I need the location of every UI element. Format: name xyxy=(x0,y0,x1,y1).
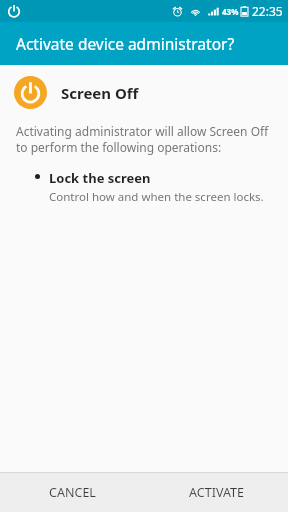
staticText: CANCEL xyxy=(49,484,96,501)
staticText: Lock the screen xyxy=(49,169,151,187)
button[interactable]: CANCEL xyxy=(0,473,144,512)
staticText: Screen Off xyxy=(61,83,139,103)
staticText: Control how and when the screen locks. xyxy=(49,189,264,205)
staticText: Activate device administrator? xyxy=(16,33,235,54)
staticText: 43% xyxy=(222,6,239,17)
staticText: 22:35 xyxy=(252,3,283,19)
button[interactable]: ACTIVATE xyxy=(144,473,288,512)
staticText: ACTIVATE xyxy=(189,484,244,501)
staticText: Activating administrator will allow Scre… xyxy=(16,123,274,156)
